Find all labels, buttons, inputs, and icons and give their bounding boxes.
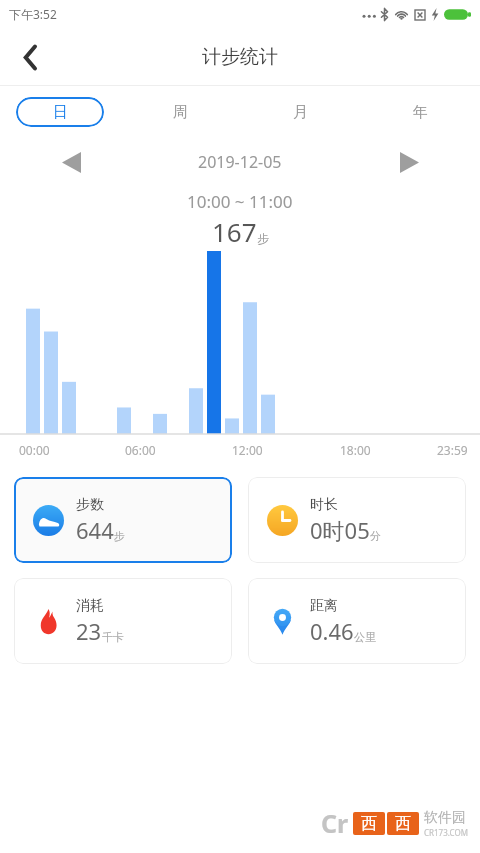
button[interactable]: 消耗 bbox=[14, 578, 232, 664]
button[interactable]: 时长 bbox=[248, 477, 466, 563]
staticText: 公里 bbox=[354, 630, 376, 644]
button[interactable]: 距离 bbox=[248, 578, 466, 664]
staticText: 千卡 bbox=[102, 630, 124, 644]
staticText: 167 bbox=[212, 214, 257, 249]
staticText: 计步统计 bbox=[202, 45, 278, 69]
staticText: 年 bbox=[413, 103, 428, 122]
staticText: 2019-12-05 bbox=[198, 151, 282, 173]
button[interactable]: 日 bbox=[16, 97, 104, 127]
staticText: 距离 bbox=[310, 597, 338, 615]
staticText: 西 bbox=[361, 814, 377, 834]
staticText: 步数 bbox=[76, 496, 104, 514]
staticText: 消耗 bbox=[76, 597, 104, 615]
staticText: 步 bbox=[114, 529, 125, 543]
staticText: 0时05 bbox=[310, 515, 370, 545]
staticText: CR173.COM bbox=[424, 827, 468, 838]
staticText: 分 bbox=[370, 529, 381, 543]
button[interactable]: Back bbox=[6, 33, 54, 81]
staticText: Cr bbox=[321, 806, 349, 840]
staticText: 月 bbox=[293, 103, 308, 122]
staticText: 步 bbox=[257, 231, 269, 246]
button[interactable]: Previous day bbox=[50, 141, 92, 183]
staticText: 软件园 bbox=[424, 809, 466, 827]
staticText: 23 bbox=[76, 616, 102, 646]
button[interactable]: 月 bbox=[256, 97, 344, 127]
staticText: 日 bbox=[53, 103, 68, 122]
button[interactable]: Next day bbox=[388, 141, 430, 183]
button[interactable]: 周 bbox=[136, 97, 224, 127]
staticText: 644 bbox=[76, 515, 114, 545]
staticText: 00:00 bbox=[19, 442, 50, 458]
button[interactable]: 步数 bbox=[14, 477, 232, 563]
staticText: 0.46 bbox=[310, 616, 354, 646]
staticText: 周 bbox=[173, 103, 188, 122]
staticText: 06:00 bbox=[125, 442, 156, 458]
staticText: 下午3:52 bbox=[9, 6, 57, 22]
staticText: 12:00 bbox=[232, 442, 263, 458]
staticText: 23:59 bbox=[437, 442, 468, 458]
staticText: 10:00 ~ 11:00 bbox=[187, 190, 293, 213]
button[interactable]: 年 bbox=[376, 97, 464, 127]
staticText: 18:00 bbox=[340, 442, 371, 458]
staticText: 西 bbox=[395, 814, 411, 834]
staticText: 时长 bbox=[310, 496, 338, 514]
